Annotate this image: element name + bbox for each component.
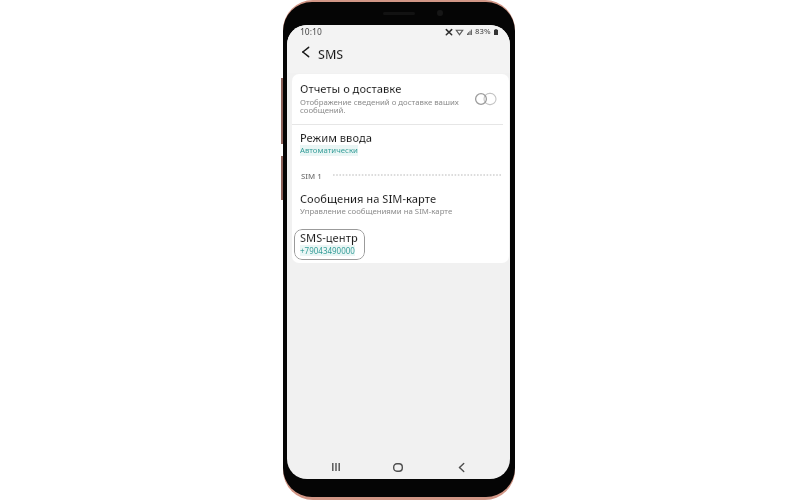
button[interactable]: SIM 1: [301, 171, 322, 182]
staticText: Отображение сведений о доставке ваших со…: [300, 97, 459, 116]
button[interactable]: Recent apps: [326, 457, 346, 477]
staticText: Управление сообщениями на SIM-карте: [300, 206, 453, 217]
staticText: SMS: [318, 46, 344, 63]
button[interactable]: Home: [388, 457, 408, 477]
button[interactable]: Отчеты о доставке: [292, 74, 509, 124]
button[interactable]: SMS-центр: [294, 229, 365, 260]
button[interactable]: 10:10: [300, 26, 322, 38]
button[interactable]: Режим ввода: [292, 125, 509, 162]
staticText: SMS-центр: [300, 230, 358, 245]
button[interactable]: Сообщения на SIM-карте: [292, 189, 509, 225]
staticText: 10:10: [300, 26, 322, 38]
button[interactable]: Delivery reports: [475, 93, 496, 105]
staticText: +79043490000: [300, 245, 355, 256]
staticText: Автоматически: [300, 145, 358, 156]
button[interactable]: Back: [451, 457, 471, 477]
staticText: 83%: [475, 26, 491, 37]
button[interactable]: Back: [295, 42, 315, 62]
staticText: Отчеты о доставке: [300, 81, 402, 96]
staticText: Режим ввода: [300, 130, 372, 145]
staticText: Сообщения на SIM-карте: [300, 191, 437, 206]
staticText: SIM 1: [301, 171, 322, 182]
